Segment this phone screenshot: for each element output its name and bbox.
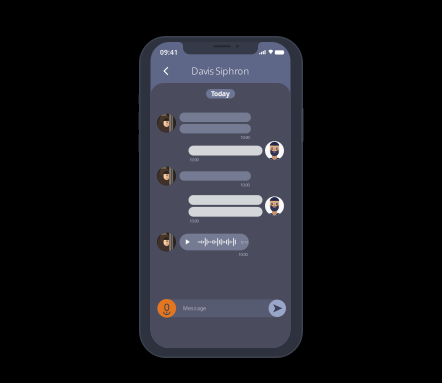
- staticText: 10:00: [240, 182, 249, 187]
- button[interactable]: Send: [269, 300, 286, 317]
- button[interactable]: Back: [159, 64, 173, 78]
- staticText: Message: [183, 305, 206, 312]
- staticText: Today: [211, 89, 230, 98]
- button[interactable]: Record voice message: [157, 299, 176, 318]
- staticText: 10:00: [240, 135, 249, 140]
- staticText: 10:00: [189, 157, 198, 162]
- button[interactable]: Play voice message: [179, 234, 249, 250]
- staticText: 10:00: [238, 252, 247, 257]
- staticText: 09:41: [160, 48, 178, 57]
- staticText: Davis Siphron: [191, 65, 249, 77]
- staticText: 0:11: [241, 239, 248, 245]
- staticText: 10:00: [189, 218, 198, 223]
